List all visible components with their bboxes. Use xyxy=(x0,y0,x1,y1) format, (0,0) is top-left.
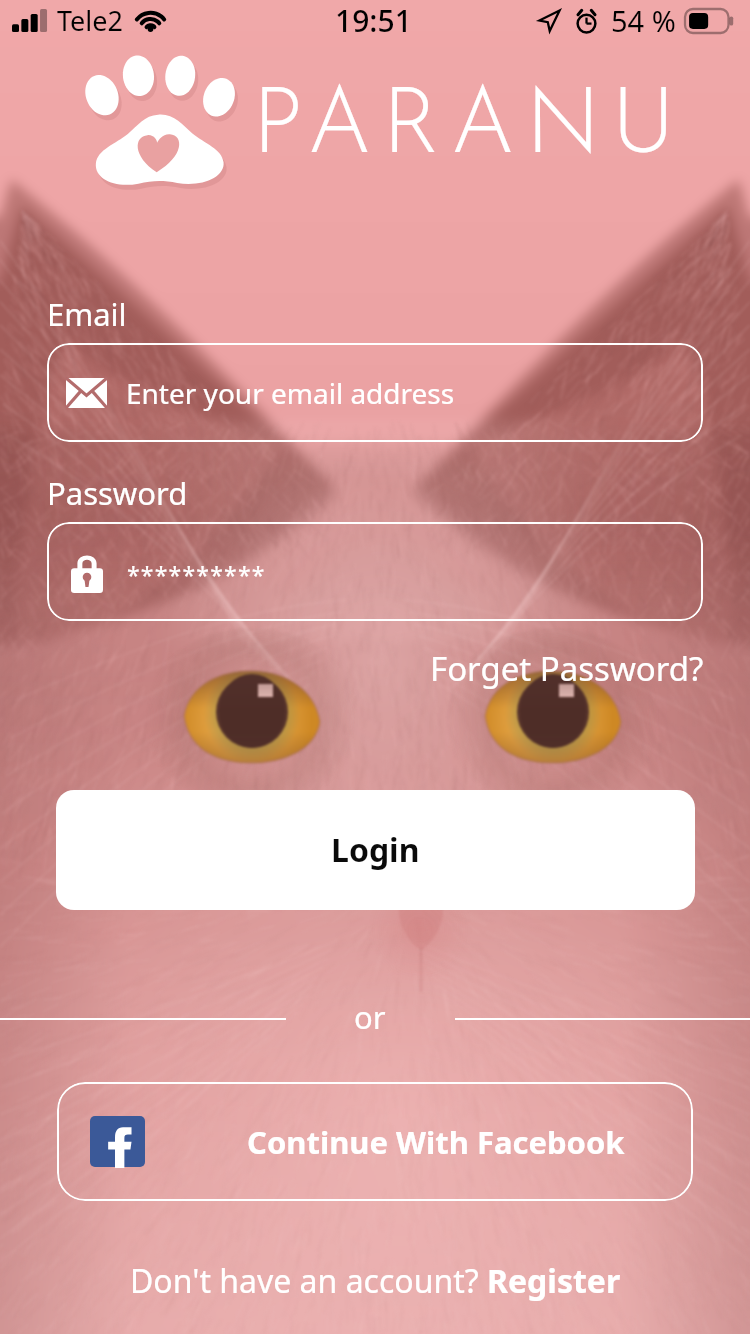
button[interactable]: Enter your email address xyxy=(47,343,703,442)
staticText: Login xyxy=(331,828,420,872)
button[interactable]: Continue With Facebook xyxy=(57,1082,693,1201)
button[interactable]: Forget Password? xyxy=(430,646,704,691)
button[interactable]: Don't have an account? Register xyxy=(130,1259,621,1303)
staticText: 19:51 xyxy=(335,0,412,41)
other: Alarm xyxy=(574,8,599,34)
button[interactable]: Login xyxy=(56,790,695,910)
button[interactable]: ********** xyxy=(47,522,703,621)
staticText: Enter your email address xyxy=(126,374,455,412)
other: Wi-Fi xyxy=(135,9,166,33)
staticText: Email xyxy=(47,293,127,335)
staticText: Forget Password? xyxy=(430,646,704,691)
staticText: ********** xyxy=(127,559,266,590)
other: Battery xyxy=(685,9,735,33)
staticText: Password xyxy=(47,472,188,514)
staticText: Tele2 xyxy=(57,2,123,39)
other: Cellular signal xyxy=(12,9,47,32)
staticText: Continue With Facebook xyxy=(247,1121,625,1163)
staticText: PARANU xyxy=(252,83,686,175)
other: Location xyxy=(537,8,561,33)
staticText: or xyxy=(354,996,386,1038)
staticText: 54 % xyxy=(611,1,676,40)
